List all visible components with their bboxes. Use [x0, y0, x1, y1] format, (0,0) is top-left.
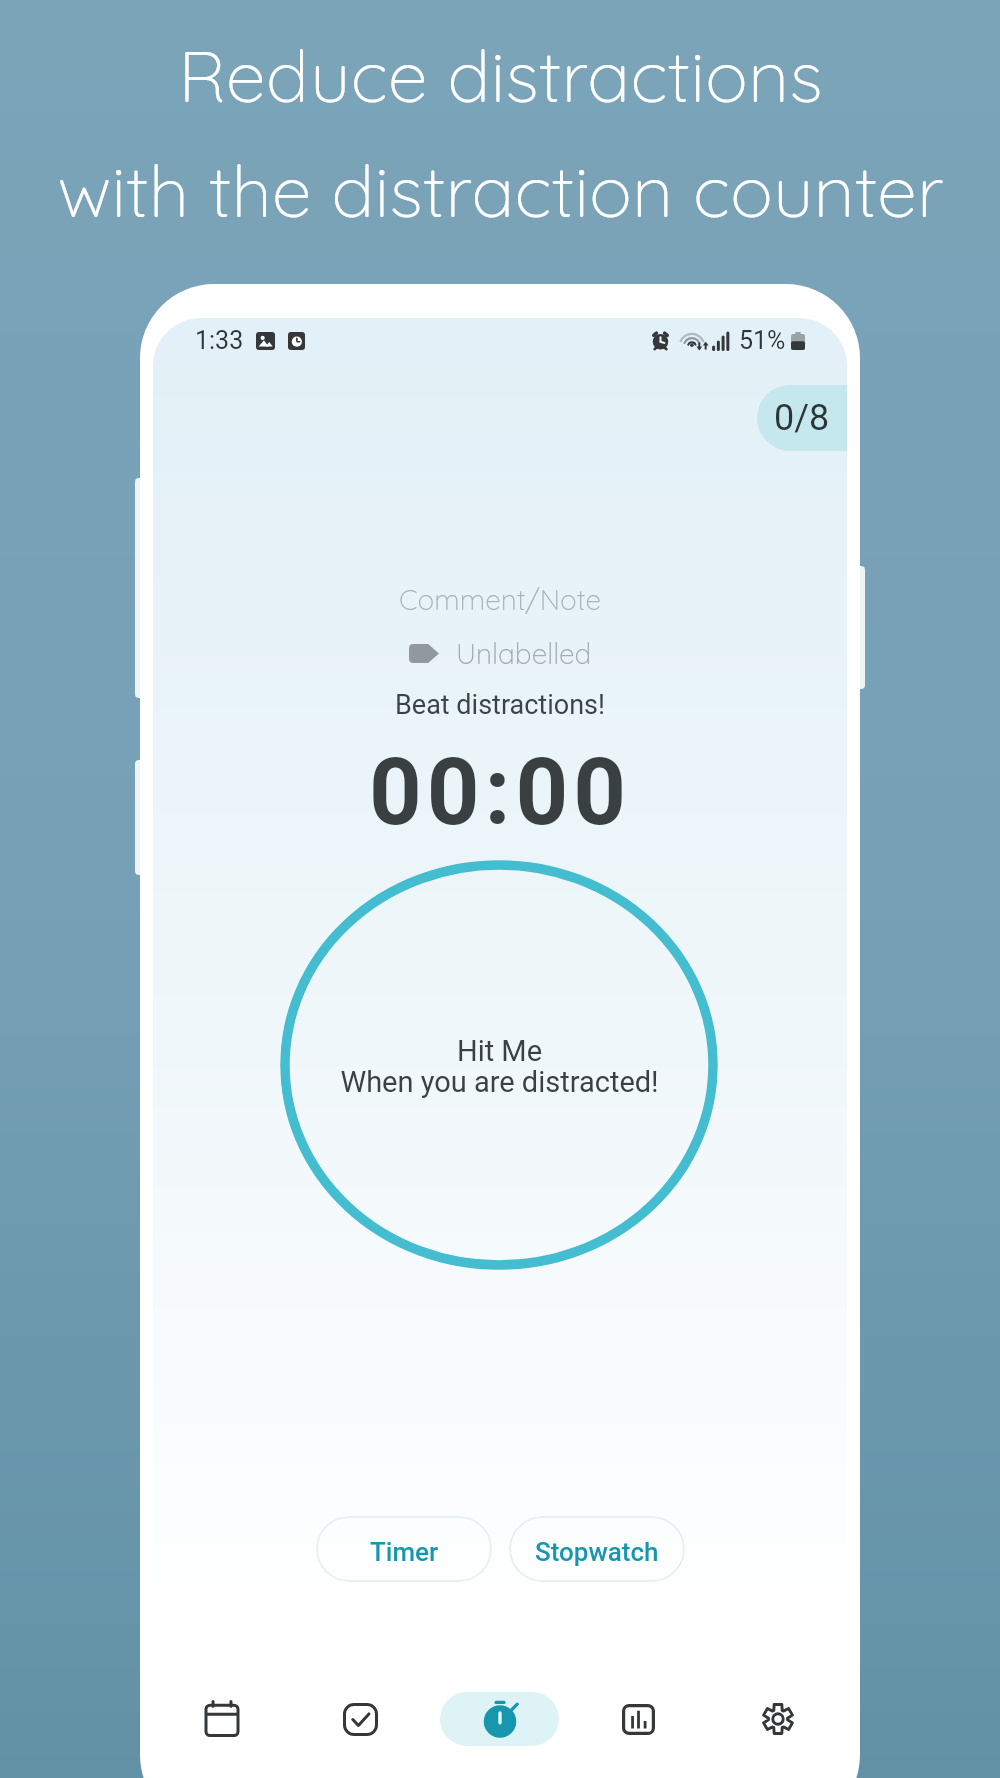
staticText: 1:33 [195, 326, 244, 355]
button[interactable]: Tasks [291, 1679, 430, 1759]
button[interactable]: Settings [708, 1679, 847, 1759]
staticText: Stopwatch [535, 1537, 659, 1567]
staticText: 00:00 [369, 739, 632, 847]
staticText: Comment/Note [399, 582, 602, 617]
staticText: Beat distractions! [395, 689, 605, 721]
button[interactable]: Timer [316, 1516, 492, 1582]
button[interactable]: Timer [440, 1692, 559, 1746]
staticText: Hit Me When you are distracted! [340, 1034, 659, 1099]
button[interactable]: Statistics [569, 1679, 708, 1759]
staticText: Reduce distractions [178, 30, 823, 120]
button[interactable]: Hit Me When you are distracted! [280, 860, 718, 1270]
button[interactable]: Calendar [153, 1679, 291, 1759]
staticText: Unlabelled [456, 636, 592, 671]
staticText: with the distraction counter [57, 145, 944, 235]
staticText: 51% [739, 326, 786, 355]
staticText: 0/8 [774, 397, 830, 439]
staticText: Timer [370, 1537, 439, 1567]
button[interactable]: 0/8 [757, 385, 847, 451]
button[interactable]: Stopwatch [509, 1516, 685, 1582]
